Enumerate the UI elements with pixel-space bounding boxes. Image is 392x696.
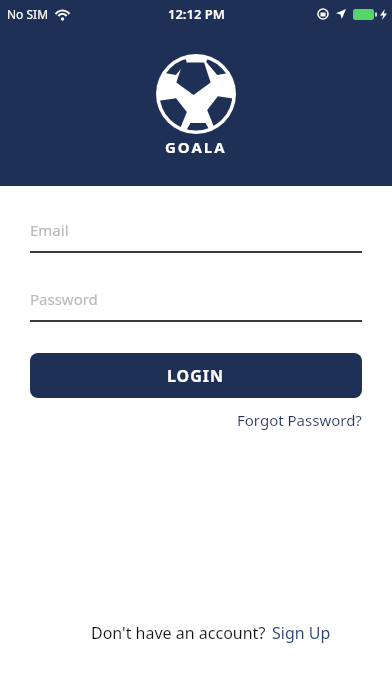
button[interactable]: LOGIN [30, 353, 362, 398]
staticText: GOALA [165, 137, 227, 157]
button[interactable]: Sign Up [272, 622, 331, 644]
staticText: LOGIN [167, 365, 225, 387]
button[interactable]: Email [30, 220, 362, 240]
staticText: Don't have an account? [91, 622, 266, 644]
staticText: No SIM [7, 6, 49, 22]
staticText: Email [30, 220, 69, 240]
staticText: Sign Up [272, 622, 331, 644]
staticText: 12:12 PM [168, 5, 225, 23]
button[interactable]: Forgot Password? [237, 410, 362, 430]
staticText: Password [30, 289, 98, 309]
staticText: Forgot Password? [237, 410, 362, 430]
button[interactable]: Password [30, 289, 362, 309]
